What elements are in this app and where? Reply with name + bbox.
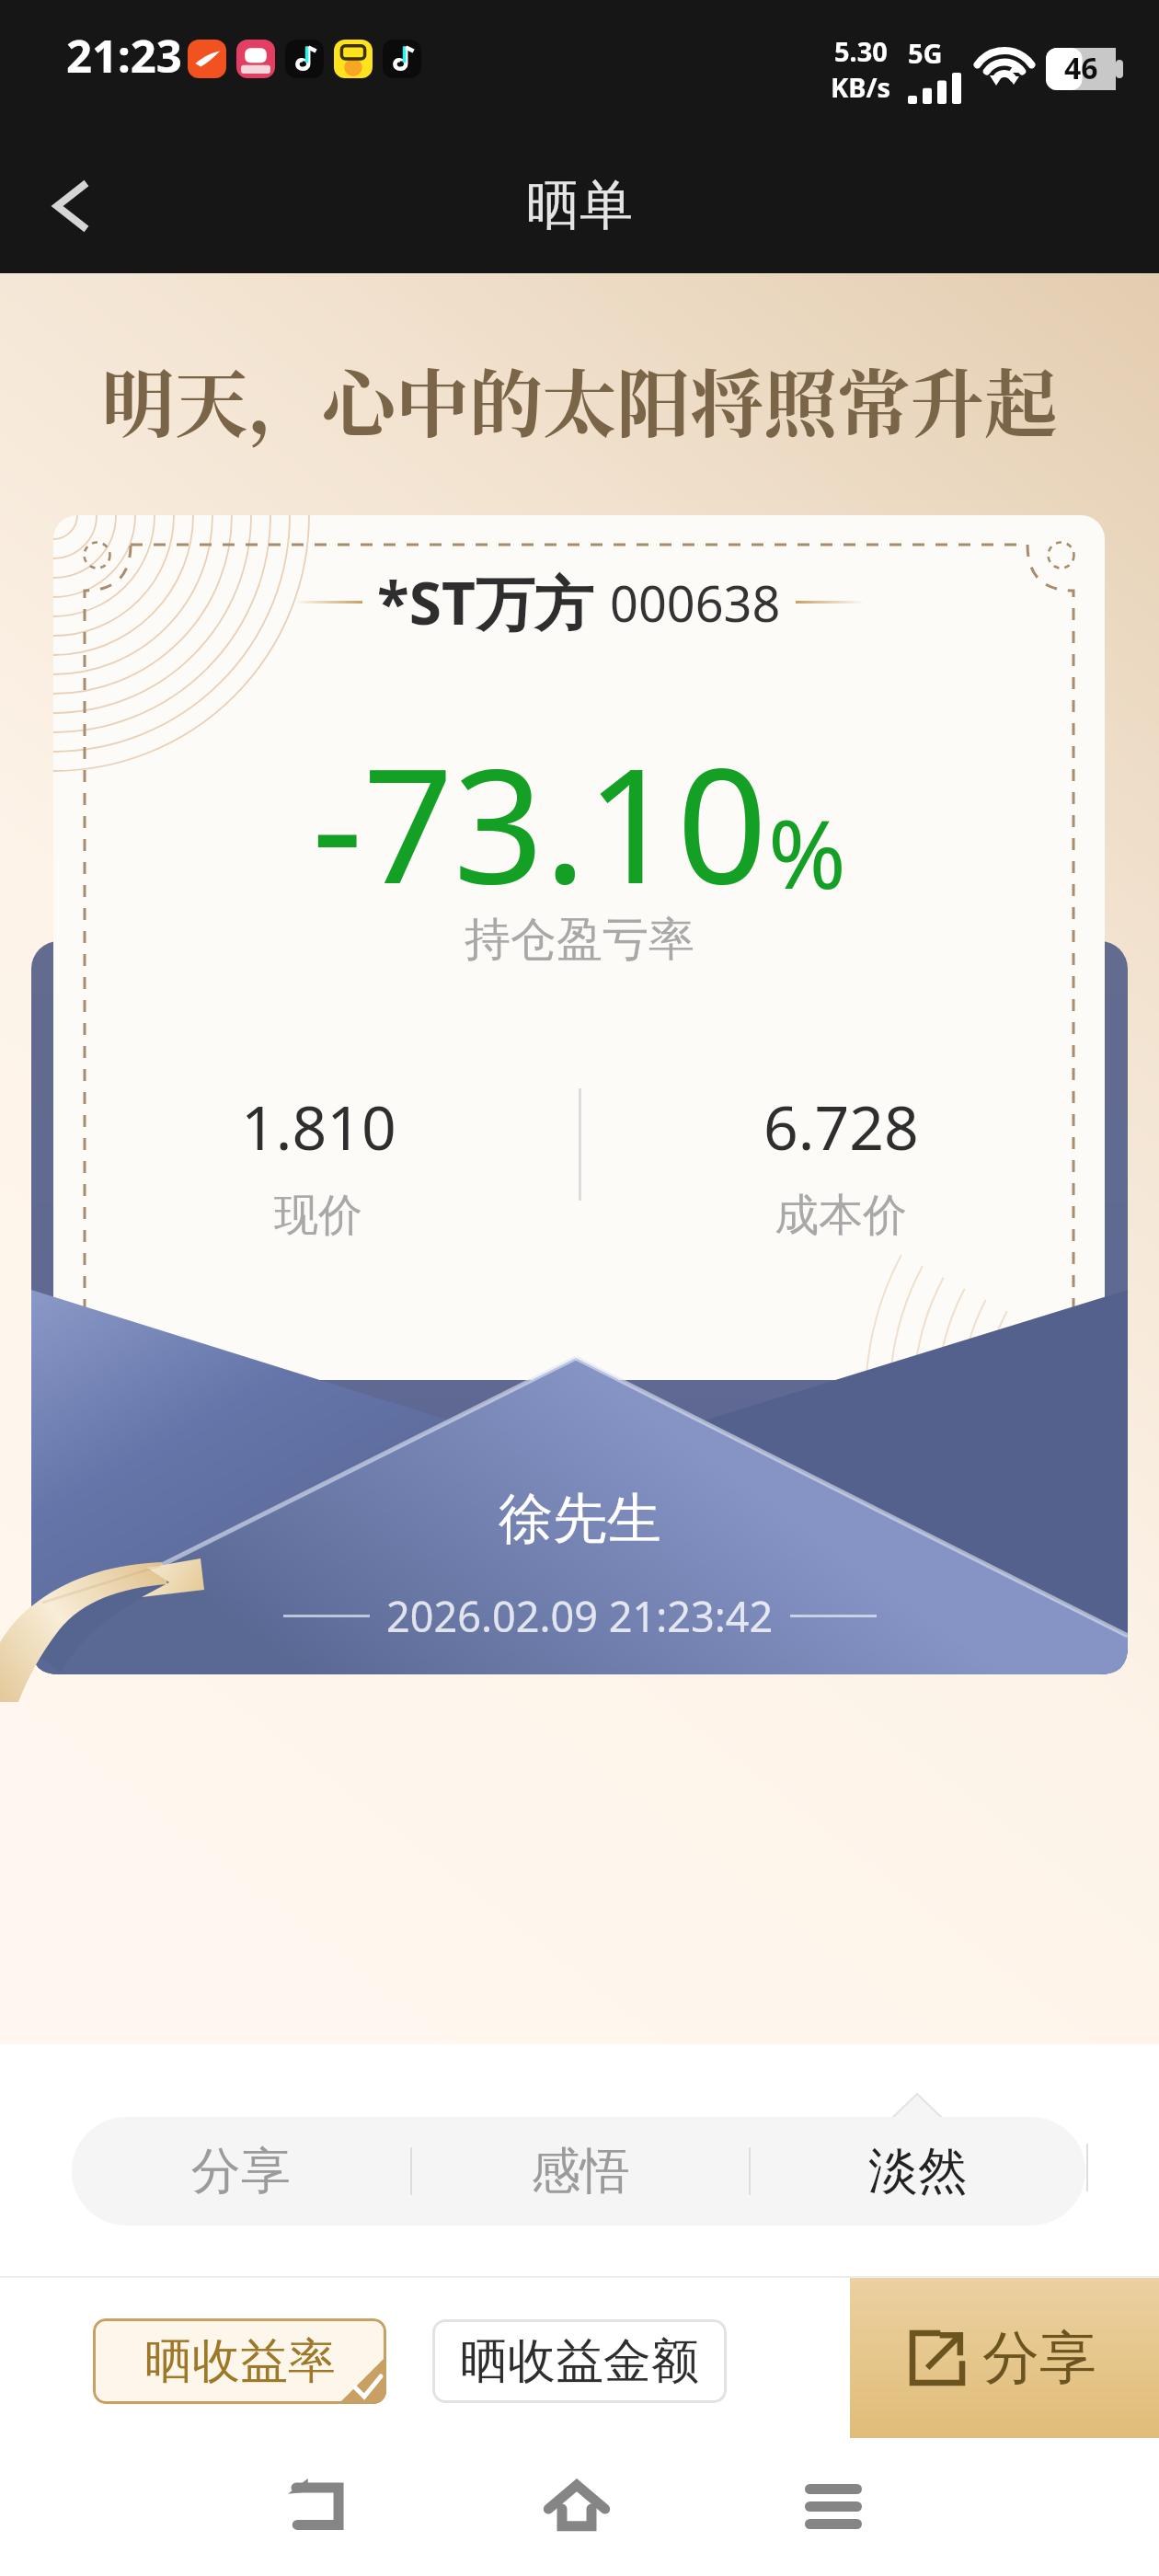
staticText: 000638 <box>610 569 781 637</box>
button[interactable]: 分享 <box>72 2117 410 2225</box>
staticText: 晒单 <box>526 172 633 239</box>
staticText: 晒收益金额 <box>460 2331 699 2392</box>
staticText: 徐先生 <box>499 1485 661 1553</box>
staticText: 晒收益率 <box>144 2331 336 2392</box>
staticText: 持仓盈亏率 <box>465 911 694 969</box>
button[interactable]: 晒收益率 <box>93 2318 386 2404</box>
button[interactable]: 淡然 <box>751 2117 1085 2225</box>
button[interactable]: 感悟 <box>412 2117 749 2225</box>
staticText: -73.10 <box>312 714 768 929</box>
staticText: 淡然 <box>868 2140 968 2202</box>
staticText: 21:23 <box>66 25 182 86</box>
staticText: 46 <box>1064 48 1098 88</box>
staticText: 明天，心中的太阳将照常升起 <box>101 346 1058 452</box>
staticText: KB/s <box>831 69 891 105</box>
button[interactable]: 晒收益金额 <box>432 2319 727 2403</box>
staticText: 成本价 <box>775 1188 907 1243</box>
button[interactable]: Recent apps <box>785 2462 886 2563</box>
staticText: 分享 <box>982 2322 1096 2394</box>
staticText: % <box>768 788 846 916</box>
button[interactable]: Back <box>26 160 118 252</box>
staticText: 1.810 <box>241 1085 396 1167</box>
staticText: *ST万方 <box>377 562 593 642</box>
staticText: 2026.02.09 21:23:42 <box>386 1588 774 1644</box>
staticText: 分享 <box>191 2140 291 2202</box>
staticText: 5.30 <box>834 33 888 69</box>
staticText: 现价 <box>274 1188 362 1243</box>
button[interactable]: Back <box>271 2462 373 2563</box>
button[interactable]: 分享 <box>850 2278 1159 2438</box>
staticText: 6.728 <box>763 1085 919 1167</box>
button[interactable]: Home <box>527 2462 628 2563</box>
staticText: 感悟 <box>531 2140 630 2202</box>
staticText: 5G <box>908 35 943 71</box>
